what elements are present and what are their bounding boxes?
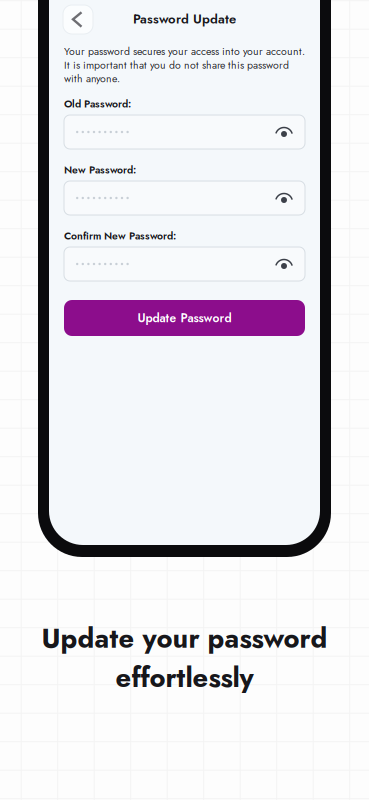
button[interactable]: Update Password: [64, 300, 305, 336]
staticText: Update your password: [41, 619, 327, 658]
staticText: Your password secures your access into y…: [64, 44, 305, 59]
staticText: Confirm New Password:: [64, 228, 176, 243]
staticText: It is important that you do not share th…: [64, 57, 289, 73]
staticText: effortlessly: [115, 658, 253, 697]
staticText: Password Update: [133, 10, 236, 28]
staticText: Update Password: [137, 309, 231, 327]
staticText: New Password:: [64, 162, 136, 177]
button[interactable]: Back: [63, 5, 93, 34]
staticText: Old Password:: [64, 96, 131, 111]
staticText: with anyone.: [64, 71, 120, 86]
button[interactable]: Show password: [271, 185, 297, 211]
button[interactable]: Show password: [271, 119, 297, 145]
button[interactable]: Show password: [271, 251, 297, 277]
